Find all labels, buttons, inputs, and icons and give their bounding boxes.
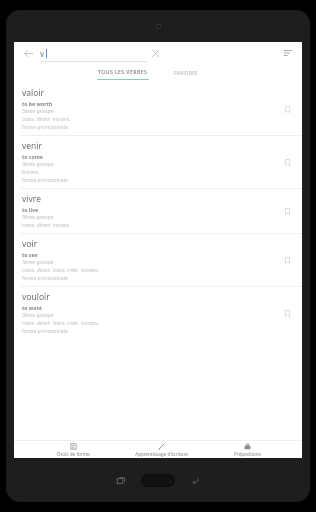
staticText: FAVORIS [174,69,198,76]
staticText: intrans. [22,169,40,176]
staticText: to come [22,153,43,160]
button[interactable]: Bookmark vouloir [279,305,295,321]
button[interactable]: vivre [14,189,302,233]
staticText: venir [22,140,43,152]
button[interactable]: Clear search [147,45,163,61]
staticText: 3ème groupe [22,161,54,168]
button[interactable]: valoir [14,83,302,135]
staticText: TOUS LES VERBES [98,68,148,75]
button[interactable]: Back [20,45,36,61]
staticText: vouloir [22,291,50,303]
staticText: trans. direct trans. indir. intrans. [22,320,100,327]
staticText: Choix de forme [56,451,90,457]
staticText: Prépositions [234,451,261,457]
staticText: to see [22,251,38,258]
staticText: v [40,48,45,59]
staticText: 3ème groupe [22,108,54,115]
staticText: trans. direct trans. indir. intrans. [22,267,100,274]
button[interactable]: Bookmark venir [279,154,295,170]
staticText: voir [22,238,38,250]
button[interactable]: Prépositions [230,442,265,458]
staticText: forme pronominale [22,124,68,131]
staticText: forme pronominale [22,177,68,184]
button[interactable]: Bookmark vivre [279,203,295,219]
button[interactable]: TOUS LES VERBES [91,65,155,80]
staticText: valoir [22,87,45,99]
staticText: 3ème groupe [22,259,54,266]
button[interactable]: Bookmark valoir [279,101,295,117]
button[interactable]: Apprentissage d'écriture [131,442,192,458]
button[interactable]: venir [14,136,302,188]
button[interactable]: voir [14,234,302,286]
button[interactable]: Back [175,469,215,491]
staticText: trans. direct intrans. [22,222,71,229]
staticText: Apprentissage d'écriture [135,451,188,457]
button[interactable]: Bookmark voir [279,252,295,268]
staticText: to live [22,206,38,213]
staticText: forme pronominale [22,275,68,282]
button[interactable]: Home [141,474,175,487]
button[interactable]: vouloir [14,287,302,339]
staticText: 3ème groupe [22,214,54,221]
button[interactable]: Sort [280,45,296,61]
button[interactable]: FAVORIS [167,66,205,79]
staticText: forme pronominale [22,328,68,335]
staticText: to want [22,304,43,311]
staticText: vivre [22,193,41,205]
button[interactable]: v [40,44,147,62]
button[interactable]: Recents [101,469,141,491]
button[interactable]: Choix de forme [52,442,94,458]
staticText: to be worth [22,100,53,107]
staticText: 3ème groupe [22,312,54,319]
staticText: trans. direct intrans. [22,116,71,123]
